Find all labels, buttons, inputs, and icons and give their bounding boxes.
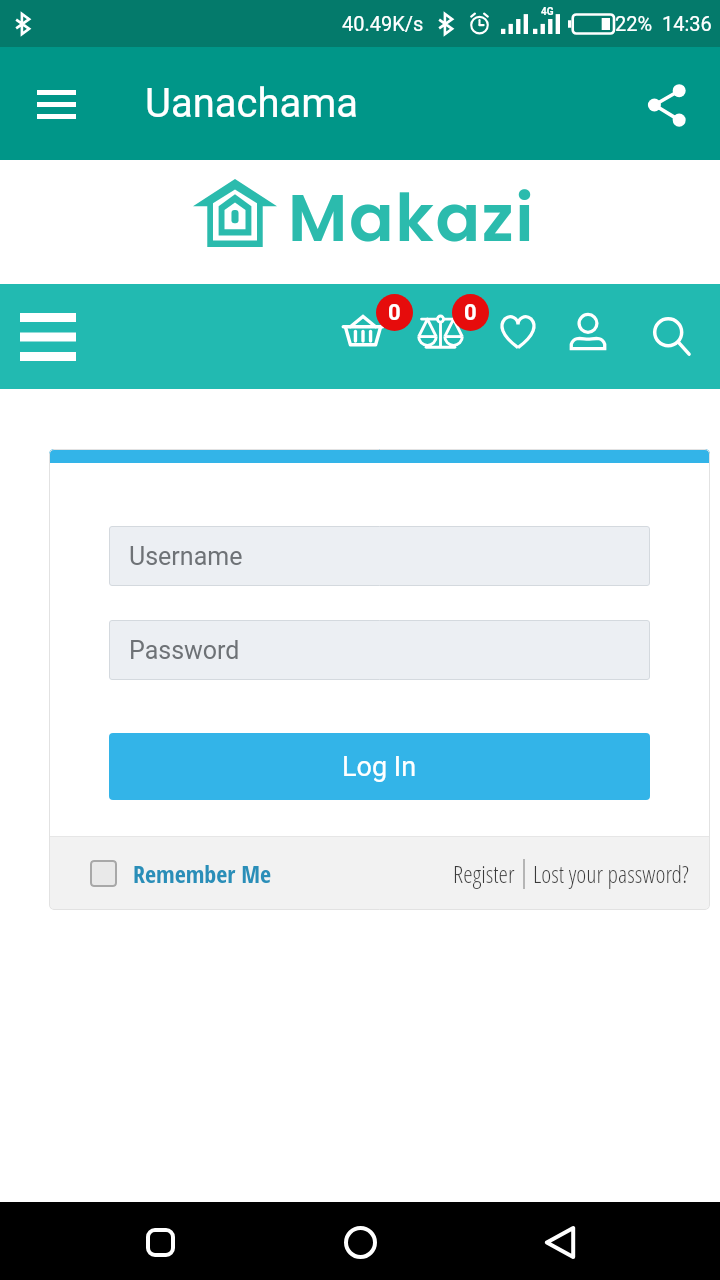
button[interactable]: Username <box>109 526 650 586</box>
button[interactable]: Cart <box>336 292 416 362</box>
button[interactable]: Log In <box>109 733 650 800</box>
staticText: 4G <box>541 6 554 18</box>
staticText: Register <box>453 857 515 890</box>
button[interactable]: Wishlist <box>492 304 544 360</box>
staticText: 40.49K/s <box>342 12 424 35</box>
button[interactable]: Account <box>562 304 614 360</box>
staticText: 0 <box>388 300 401 326</box>
staticText: Log In <box>342 751 417 783</box>
staticText: Makazi <box>288 172 536 264</box>
staticText: 0 <box>464 300 477 326</box>
staticText: Username <box>129 542 243 571</box>
staticText: Remember Me <box>133 857 272 890</box>
button[interactable]: Password <box>109 620 650 680</box>
staticText: 14:36 <box>662 12 712 35</box>
button[interactable]: Lost your password? <box>533 849 689 898</box>
button[interactable]: Home <box>330 1212 390 1272</box>
button[interactable]: Compare <box>414 292 494 362</box>
button[interactable]: Remember Me <box>49 849 282 898</box>
button[interactable]: Search <box>646 309 698 365</box>
button[interactable]: Register <box>453 849 515 898</box>
staticText: Uanachama <box>145 80 359 127</box>
staticText: Password <box>129 636 240 665</box>
staticText: 22% <box>615 12 653 35</box>
button[interactable]: Menu <box>28 76 84 132</box>
button[interactable]: Back <box>530 1212 590 1272</box>
staticText: Lost your password? <box>533 857 689 890</box>
button[interactable]: Menu <box>10 299 86 375</box>
button[interactable]: Share <box>639 77 695 133</box>
button[interactable]: Recents <box>130 1212 190 1272</box>
